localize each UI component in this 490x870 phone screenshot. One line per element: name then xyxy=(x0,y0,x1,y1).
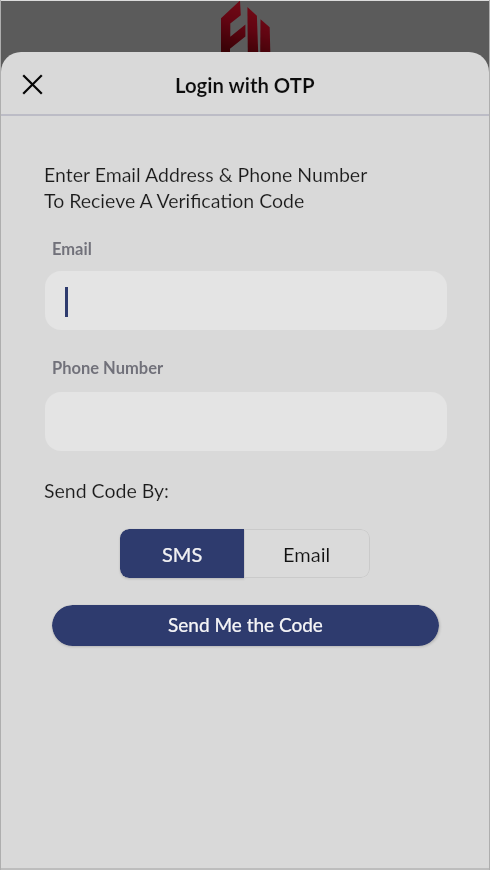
button[interactable] xyxy=(45,271,447,330)
staticText: Send Code By: xyxy=(44,479,169,502)
button[interactable]: Email xyxy=(244,529,370,578)
staticText: Login with OTP xyxy=(175,73,315,97)
button[interactable]: Close xyxy=(9,60,55,106)
staticText: Email xyxy=(52,239,92,259)
button[interactable]: Send Me the Code xyxy=(52,605,439,646)
staticText: Email xyxy=(283,542,331,566)
staticText: Phone Number xyxy=(52,358,164,378)
staticText: Send Me the Code xyxy=(168,613,323,636)
button[interactable]: SMS xyxy=(120,529,244,578)
staticText: Enter Email Address & Phone Number To Re… xyxy=(44,163,368,212)
staticText: SMS xyxy=(162,542,203,566)
